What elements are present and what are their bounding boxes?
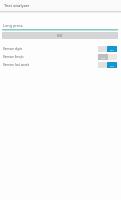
staticText: Remove digits xyxy=(3,47,98,51)
staticText: Text analyzer xyxy=(4,3,30,9)
button[interactable]: Remove digits xyxy=(0,45,121,53)
button[interactable]: Remove foul words xyxy=(0,61,121,69)
staticText: Remove Emojis xyxy=(3,55,98,59)
staticText: ON xyxy=(110,64,114,67)
staticText: ON xyxy=(110,48,114,51)
staticText: GO xyxy=(57,33,63,38)
staticText: Long press xyxy=(3,23,23,28)
button[interactable]: GO xyxy=(2,32,118,39)
button[interactable]: Text analyzer xyxy=(0,0,121,11)
staticText: Remove foul words xyxy=(3,63,98,67)
staticText: OFF xyxy=(101,56,106,59)
button[interactable]: Remove Emojis xyxy=(0,53,121,61)
